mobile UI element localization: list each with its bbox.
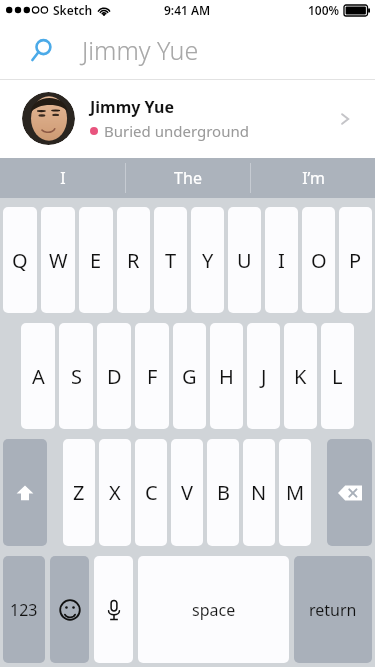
staticText: Z bbox=[73, 479, 85, 506]
button[interactable]: Z bbox=[63, 439, 95, 546]
button[interactable]: Search bbox=[0, 20, 375, 79]
button[interactable]: J bbox=[247, 323, 280, 429]
staticText: N bbox=[251, 479, 267, 506]
button[interactable]: Emoji bbox=[50, 556, 89, 663]
staticText: C bbox=[145, 479, 158, 506]
button[interactable]: W bbox=[41, 207, 75, 313]
staticText: H bbox=[219, 363, 234, 390]
staticText: V bbox=[181, 479, 193, 506]
button[interactable]: F bbox=[135, 323, 169, 429]
staticText: O bbox=[311, 247, 327, 274]
staticText: X bbox=[109, 479, 121, 506]
button[interactable]: Dictation bbox=[94, 556, 133, 663]
button[interactable]: K bbox=[284, 323, 317, 429]
button[interactable]: 123 bbox=[3, 556, 45, 663]
button[interactable]: C bbox=[135, 439, 167, 546]
button[interactable]: Jimmy Yue bbox=[0, 80, 375, 157]
staticText: A bbox=[32, 363, 45, 390]
staticText: Buried underground bbox=[104, 121, 249, 141]
staticText: D bbox=[107, 363, 122, 390]
staticText: L bbox=[332, 363, 343, 390]
button[interactable]: A bbox=[21, 323, 55, 429]
staticText: I bbox=[60, 167, 66, 189]
button[interactable]: return bbox=[294, 556, 372, 663]
button[interactable]: U bbox=[228, 207, 261, 313]
button[interactable]: The bbox=[126, 158, 250, 198]
staticText: I’m bbox=[302, 167, 325, 189]
staticText: Q bbox=[12, 247, 28, 274]
button[interactable]: R bbox=[117, 207, 150, 313]
button[interactable]: X bbox=[99, 439, 131, 546]
staticText: R bbox=[127, 247, 140, 274]
staticText: K bbox=[294, 363, 307, 390]
button[interactable]: P bbox=[339, 207, 372, 313]
button[interactable]: E bbox=[79, 207, 113, 313]
button[interactable]: D bbox=[97, 323, 131, 429]
staticText: 9:41 AM bbox=[164, 2, 211, 18]
button[interactable]: I’m bbox=[251, 158, 375, 198]
staticText: P bbox=[349, 247, 362, 274]
staticText: return bbox=[309, 599, 357, 621]
staticText: J bbox=[261, 363, 267, 390]
button[interactable]: H bbox=[210, 323, 243, 429]
staticText: 123 bbox=[10, 599, 38, 621]
button[interactable]: L bbox=[321, 323, 354, 429]
staticText: The bbox=[174, 167, 202, 189]
button[interactable]: T bbox=[154, 207, 187, 313]
staticText: 100% bbox=[308, 2, 340, 18]
button[interactable]: space bbox=[138, 556, 289, 663]
button[interactable]: O bbox=[302, 207, 335, 313]
button[interactable]: Shift bbox=[3, 439, 47, 546]
button[interactable]: Backspace bbox=[327, 439, 372, 546]
staticText: U bbox=[237, 247, 252, 274]
other: Open contact bbox=[337, 111, 353, 127]
staticText: W bbox=[49, 247, 68, 274]
staticText: I bbox=[278, 247, 285, 274]
button[interactable]: B bbox=[207, 439, 239, 546]
staticText: M bbox=[286, 479, 305, 506]
other: Search bbox=[30, 38, 54, 62]
staticText: E bbox=[90, 247, 102, 274]
button[interactable]: G bbox=[173, 323, 206, 429]
staticText: Jimmy Yue bbox=[82, 33, 199, 67]
staticText: Sketch bbox=[53, 2, 93, 18]
button[interactable]: Q bbox=[3, 207, 37, 313]
button[interactable]: I bbox=[265, 207, 298, 313]
staticText: F bbox=[147, 363, 158, 390]
button[interactable]: I bbox=[0, 158, 125, 198]
button[interactable]: Y bbox=[191, 207, 224, 313]
staticText: space bbox=[192, 599, 236, 621]
staticText: G bbox=[182, 363, 197, 390]
button[interactable]: S bbox=[59, 323, 93, 429]
staticText: Y bbox=[202, 247, 214, 274]
staticText: B bbox=[217, 479, 230, 506]
staticText: T bbox=[165, 247, 177, 274]
staticText: S bbox=[71, 363, 82, 390]
button[interactable]: M bbox=[279, 439, 311, 546]
button[interactable]: V bbox=[171, 439, 203, 546]
button[interactable]: N bbox=[243, 439, 275, 546]
staticText: Jimmy Yue bbox=[90, 96, 175, 118]
